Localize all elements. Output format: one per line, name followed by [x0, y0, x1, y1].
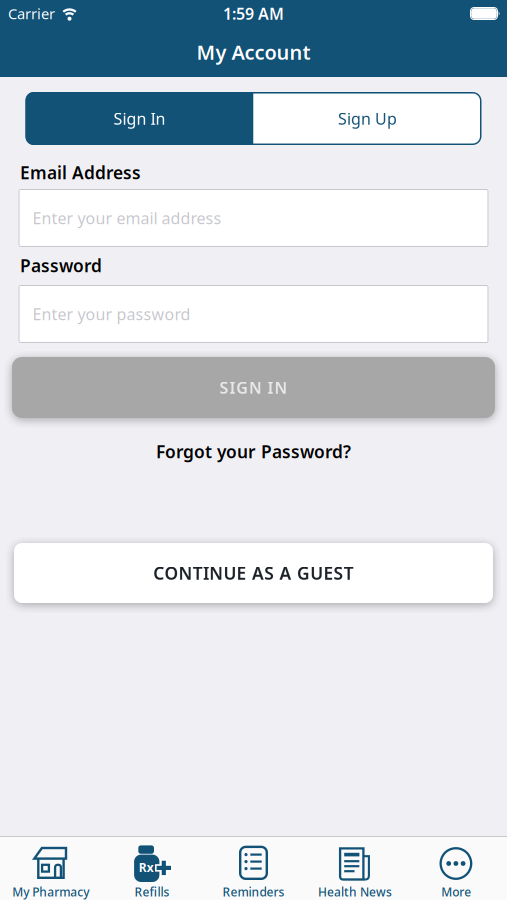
- staticText: More: [441, 884, 471, 900]
- button[interactable]: Sign Up: [253, 92, 481, 145]
- button[interactable]: Forgot your Password?: [156, 440, 351, 463]
- staticText: SIGN IN: [220, 377, 287, 398]
- staticText: CONTINUE AS A GUEST: [153, 561, 354, 584]
- staticText: Refills: [135, 884, 170, 900]
- button[interactable]: Health News: [304, 844, 406, 900]
- button[interactable]: Enter your email address: [18, 189, 488, 247]
- staticText: Forgot your Password?: [156, 440, 351, 463]
- staticText: Enter your email address: [32, 207, 221, 229]
- staticText: Reminders: [222, 884, 284, 900]
- staticText: Email Address: [20, 161, 141, 184]
- staticText: Password: [20, 254, 102, 277]
- staticText: Enter your password: [32, 303, 190, 325]
- button[interactable]: SIGN IN: [12, 357, 495, 418]
- staticText: Sign Up: [338, 108, 397, 129]
- button[interactable]: CONTINUE AS A GUEST: [14, 543, 493, 603]
- staticText: Sign In: [113, 108, 165, 129]
- button[interactable]: Reminders: [203, 844, 304, 900]
- button[interactable]: More: [406, 844, 507, 900]
- button[interactable]: Sign In: [25, 92, 253, 145]
- button[interactable]: Enter your password: [18, 285, 488, 343]
- staticText: Carrier: [8, 4, 55, 23]
- button[interactable]: My Pharmacy: [0, 844, 101, 900]
- staticText: My Pharmacy: [12, 884, 89, 900]
- staticText: My Account: [196, 39, 310, 65]
- staticText: 1:59 AM: [223, 3, 284, 24]
- staticText: Health News: [318, 884, 392, 900]
- button[interactable]: Rx: [101, 844, 203, 900]
- staticText: Rx: [139, 859, 154, 875]
